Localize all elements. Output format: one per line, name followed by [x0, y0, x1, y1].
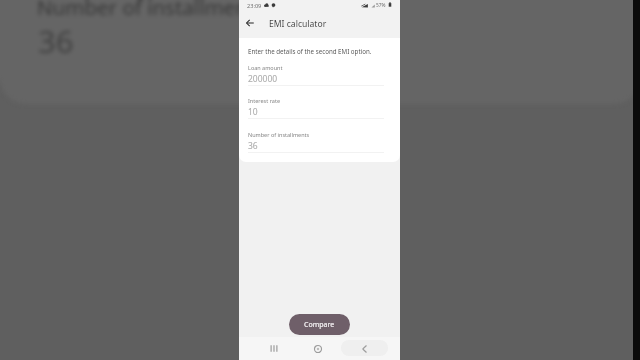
staticText: Number of installments: [248, 131, 310, 138]
staticText: Enter the details of the second EMI opti…: [248, 47, 372, 55]
button[interactable]: Back: [352, 337, 376, 360]
staticText: Loan amount: [248, 64, 283, 71]
button[interactable]: Compare: [289, 314, 350, 335]
staticText: 23:09: [247, 2, 262, 10]
staticText: Compare: [304, 320, 335, 330]
button[interactable]: Recent apps: [262, 337, 286, 360]
staticText: 57%: [376, 2, 386, 9]
staticText: 36: [38, 20, 74, 62]
staticText: 200000: [248, 73, 278, 85]
staticText: EMI calculator: [269, 18, 327, 30]
button[interactable]: Back: [241, 14, 258, 31]
staticText: 36: [248, 140, 258, 152]
staticText: Number of installments: [37, 0, 266, 21]
staticText: Interest rate: [248, 97, 280, 104]
staticText: 10: [248, 106, 258, 118]
button[interactable]: Home: [306, 337, 330, 360]
